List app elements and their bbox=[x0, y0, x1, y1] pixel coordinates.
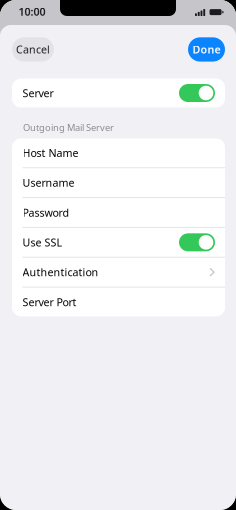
button[interactable]: Done bbox=[188, 37, 225, 62]
button[interactable]: Use SSL bbox=[12, 228, 225, 257]
button[interactable]: Password bbox=[12, 198, 225, 227]
staticText: Password bbox=[22, 205, 69, 220]
staticText: Use SSL bbox=[22, 235, 62, 249]
staticText: Server Port bbox=[22, 295, 76, 309]
staticText: Authentication bbox=[22, 265, 98, 279]
staticText: 10:00 bbox=[18, 4, 45, 19]
staticText: Outgoing Mail Server bbox=[23, 121, 114, 134]
staticText: Username bbox=[22, 176, 74, 190]
staticText: Server bbox=[22, 86, 53, 100]
button[interactable]: Username bbox=[12, 168, 225, 197]
button[interactable]: Authentication bbox=[12, 258, 225, 287]
staticText: Done bbox=[192, 42, 220, 57]
button[interactable]: Cancel bbox=[12, 37, 54, 62]
button[interactable]: Host Name bbox=[12, 138, 225, 167]
staticText: Cancel bbox=[16, 42, 50, 57]
button[interactable]: Server Port bbox=[12, 288, 225, 316]
staticText: Host Name bbox=[22, 146, 78, 160]
button[interactable]: Server bbox=[12, 79, 225, 107]
